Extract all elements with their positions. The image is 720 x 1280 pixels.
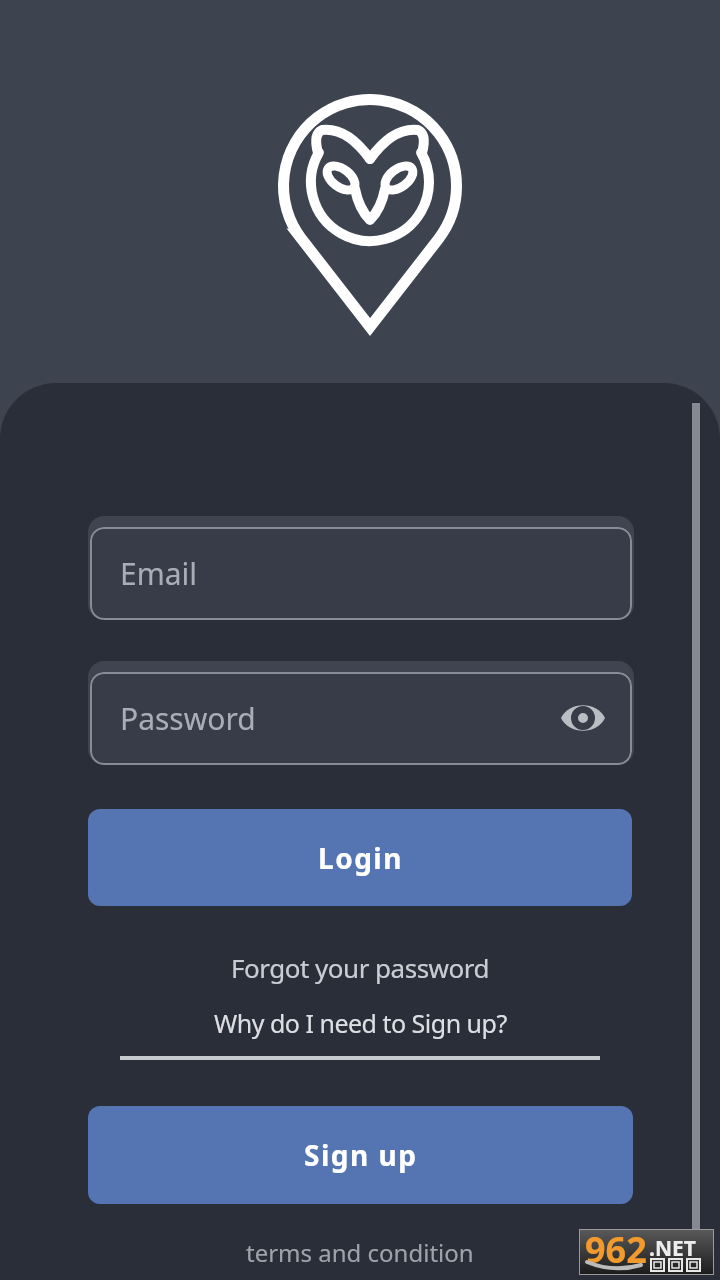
staticText: terms and condition bbox=[246, 1236, 474, 1269]
button[interactable]: terms and condition bbox=[0, 1236, 720, 1269]
staticText: .NET bbox=[649, 1234, 696, 1263]
button[interactable]: Sign up bbox=[88, 1106, 633, 1204]
button[interactable]: Password bbox=[90, 672, 632, 765]
button[interactable]: Forgot your password bbox=[0, 950, 720, 985]
staticText: Login bbox=[318, 839, 403, 877]
button[interactable]: Why do I need to Sign up? bbox=[0, 1006, 720, 1040]
button[interactable] bbox=[88, 661, 634, 765]
staticText: Password bbox=[120, 698, 256, 739]
staticText: Forgot your password bbox=[231, 950, 489, 985]
staticText: Email bbox=[120, 553, 198, 594]
button[interactable]: Login bbox=[88, 809, 632, 906]
staticText: Why do I need to Sign up? bbox=[214, 1006, 507, 1040]
button[interactable] bbox=[553, 695, 613, 741]
staticText: 962 bbox=[585, 1225, 647, 1271]
button[interactable] bbox=[88, 516, 634, 620]
button[interactable]: Email bbox=[90, 527, 632, 620]
staticText: Sign up bbox=[304, 1136, 418, 1174]
